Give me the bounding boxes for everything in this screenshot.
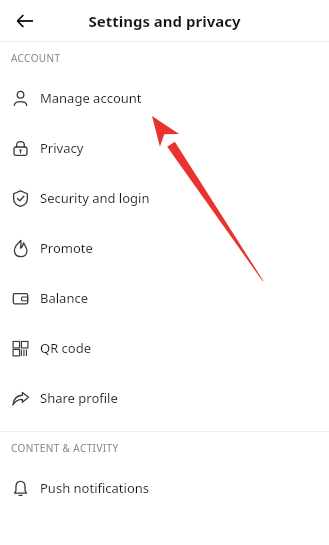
staticText: ACCOUNT <box>11 51 61 65</box>
button[interactable]: Share profile <box>0 373 329 423</box>
button[interactable]: Privacy <box>0 123 329 173</box>
button[interactable]: Push notifications <box>0 463 329 513</box>
staticText: Security and login <box>40 189 150 207</box>
button[interactable]: Manage account <box>0 73 329 123</box>
staticText: Privacy <box>40 139 84 157</box>
staticText: Balance <box>40 289 88 307</box>
staticText: Settings and privacy <box>88 11 241 31</box>
button[interactable]: Back <box>8 4 41 37</box>
staticText: QR code <box>40 339 92 357</box>
staticText: CONTENT & ACTIVITY <box>11 441 119 455</box>
button[interactable]: Balance <box>0 273 329 323</box>
staticText: Promote <box>40 239 93 257</box>
button[interactable]: QR code <box>0 323 329 373</box>
staticText: Push notifications <box>40 479 150 497</box>
button[interactable]: Promote <box>0 223 329 273</box>
staticText: Share profile <box>40 389 118 407</box>
staticText: Manage account <box>40 89 142 107</box>
button[interactable]: Security and login <box>0 173 329 223</box>
